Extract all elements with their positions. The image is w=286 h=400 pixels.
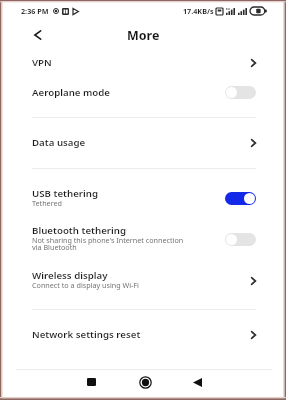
staticText: Not sharing this phone's Internet connec… [32,235,184,253]
staticText: 2:36 PM [21,6,49,16]
staticText: Wireless display [32,269,108,282]
button[interactable]: Back [24,22,50,48]
staticText: Bluetooth tethering [32,224,127,237]
staticText: Network settings reset [32,328,141,341]
staticText: 17.4KB/s [183,6,214,16]
button[interactable]: Recent apps [78,369,104,395]
button[interactable]: Switch off [225,86,256,99]
button[interactable]: Data usage [0,130,286,155]
staticText: Aeroplane mode [32,86,111,99]
staticText: USB tethering [32,187,99,200]
button[interactable]: Network settings reset [0,322,286,347]
staticText: Tethered [32,198,62,208]
button[interactable]: Aeroplane mode [0,80,286,105]
staticText: Connect to a display using Wi-Fi [32,280,139,290]
button[interactable]: Switch off [225,233,256,246]
staticText: More [127,27,160,44]
button[interactable]: Switch on [225,192,256,205]
button[interactable]: USB tethering [0,184,286,213]
button[interactable]: Back [184,369,210,395]
button[interactable]: Home [132,369,158,395]
staticText: VPN [32,56,52,69]
button[interactable]: VPN [0,48,286,77]
button[interactable]: Bluetooth tethering [0,222,286,257]
button[interactable]: Wireless display [0,266,286,295]
staticText: Data usage [32,136,86,149]
